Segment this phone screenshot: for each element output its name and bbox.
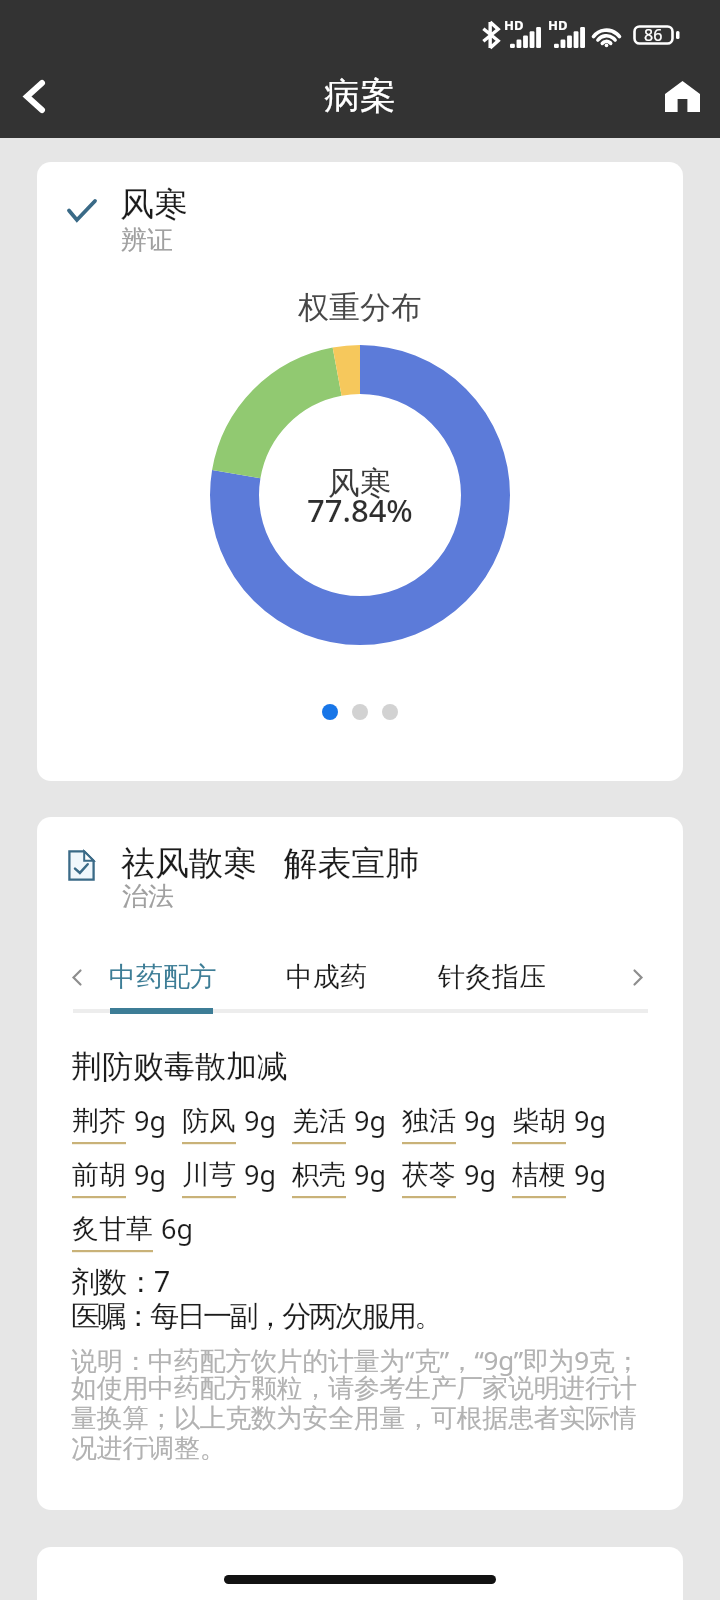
button[interactable]: 针灸指压: [432, 954, 552, 1000]
button[interactable]: Back: [6, 68, 62, 124]
staticText: 86: [644, 24, 663, 46]
staticText: 量换算；以上克数为安全用量，可根据患者实际情: [71, 1402, 637, 1435]
button[interactable]: Home: [654, 68, 710, 124]
staticText: 病案: [324, 73, 396, 118]
staticText: 9g: [574, 1102, 607, 1139]
staticText: 炙甘草: [72, 1212, 153, 1246]
button[interactable]: Next: [623, 962, 653, 992]
staticText: 川芎: [182, 1158, 236, 1192]
staticText: 辨证: [121, 224, 173, 257]
staticText: 荆芥: [72, 1104, 126, 1138]
button[interactable]: Previous: [62, 962, 92, 992]
staticText: 柴胡: [512, 1104, 566, 1138]
staticText: 77.84%: [307, 489, 413, 531]
button[interactable]: Page 3: [382, 704, 398, 720]
staticText: 桔梗: [512, 1158, 566, 1192]
staticText: 9g: [354, 1102, 387, 1139]
button[interactable]: 中成药: [280, 954, 373, 1000]
staticText: 祛风散寒 解表宣肺: [121, 839, 420, 885]
staticText: 9g: [464, 1156, 497, 1193]
button[interactable]: Page 2: [352, 704, 368, 720]
staticText: 羌活: [292, 1104, 346, 1138]
staticText: 枳壳: [292, 1158, 346, 1192]
staticText: 荆防败毒散加减: [71, 1047, 288, 1086]
staticText: 剂数：7: [71, 1261, 169, 1301]
staticText: 医嘱：每日一副，分两次服用。: [71, 1298, 441, 1335]
staticText: 9g: [244, 1102, 277, 1139]
button[interactable]: 风寒: [37, 162, 683, 781]
staticText: 风寒: [328, 463, 392, 503]
staticText: HD: [548, 16, 568, 34]
staticText: 9g: [464, 1102, 497, 1139]
staticText: 况进行调整。: [71, 1432, 226, 1465]
button[interactable]: Page 1: [322, 704, 338, 720]
staticText: 说明：中药配方饮片的计量为“克”，“9g”即为9克；: [71, 1342, 641, 1378]
staticText: 茯苓: [402, 1158, 456, 1192]
staticText: 治法: [122, 880, 174, 913]
staticText: 防风: [182, 1104, 236, 1138]
staticText: HD: [504, 16, 524, 34]
staticText: 9g: [134, 1156, 167, 1193]
staticText: 如使用中药配方颗粒，请参考生产厂家说明进行计: [71, 1372, 637, 1405]
staticText: 独活: [402, 1104, 456, 1138]
staticText: 9g: [244, 1156, 277, 1193]
staticText: 风寒: [120, 183, 188, 226]
staticText: 权重分布: [37, 288, 683, 327]
staticText: 针灸指压: [438, 960, 546, 994]
button[interactable]: 中药配方: [103, 954, 223, 1000]
button[interactable]: 祛风散寒 解表宣肺: [37, 817, 683, 1510]
staticText: 6g: [161, 1210, 194, 1247]
staticText: 9g: [574, 1156, 607, 1193]
staticText: 中药配方: [109, 960, 217, 994]
staticText: 9g: [354, 1156, 387, 1193]
staticText: 9g: [134, 1102, 167, 1139]
staticText: 前胡: [72, 1158, 126, 1192]
staticText: 中成药: [286, 960, 367, 994]
